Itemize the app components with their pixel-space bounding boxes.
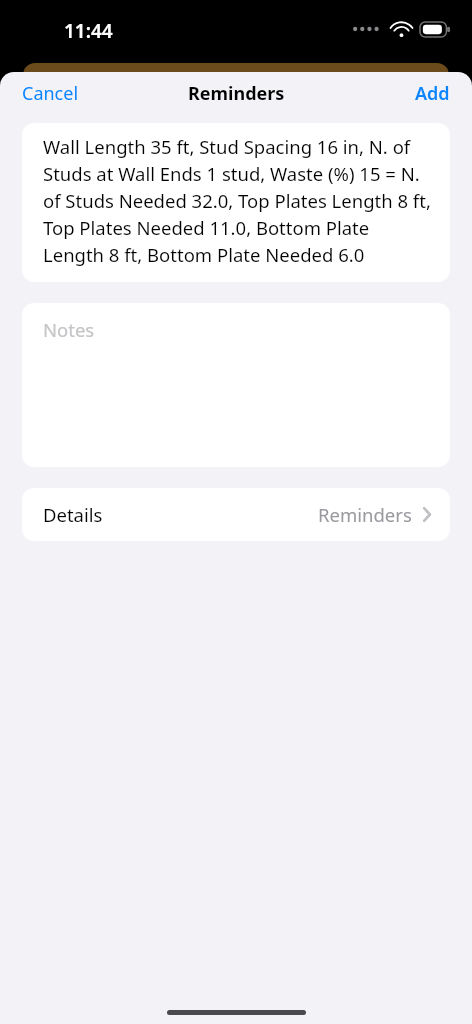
staticText: Notes	[43, 317, 95, 342]
button[interactable]: Add	[393, 75, 472, 112]
button[interactable]: Wall Length 35 ft, Stud Spacing 16 in, N…	[22, 123, 450, 282]
staticText: Details	[43, 502, 103, 527]
staticText: Reminders	[188, 81, 285, 106]
staticText: Add	[415, 81, 450, 106]
staticText: 11:44	[64, 18, 113, 44]
button[interactable]: Notes	[22, 303, 450, 467]
staticText: Wall Length 35 ft, Stud Spacing 16 in, N…	[43, 134, 434, 268]
staticText: Reminders	[318, 502, 412, 527]
button[interactable]: Cancel	[0, 75, 101, 112]
button[interactable]: Details	[22, 488, 450, 541]
staticText: Cancel	[22, 81, 79, 106]
